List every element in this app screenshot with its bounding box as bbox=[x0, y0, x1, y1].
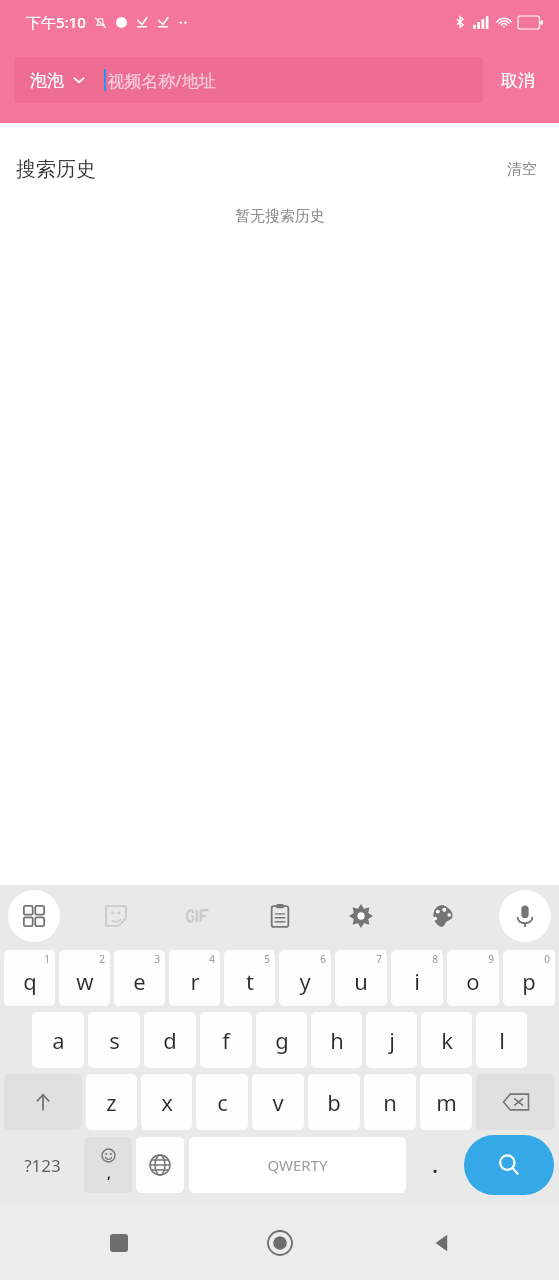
button[interactable]: t bbox=[224, 950, 275, 1006]
button[interactable]: w bbox=[59, 950, 110, 1006]
staticText: n bbox=[383, 1087, 397, 1117]
staticText: 清空 bbox=[507, 160, 537, 179]
button[interactable]: j bbox=[366, 1012, 417, 1068]
staticText: 6 bbox=[320, 952, 326, 966]
button[interactable]: Home bbox=[250, 1213, 310, 1273]
button[interactable]: a bbox=[32, 1012, 84, 1068]
staticText: h bbox=[330, 1025, 344, 1055]
staticText: k bbox=[441, 1025, 453, 1055]
staticText: x bbox=[161, 1087, 173, 1117]
staticText: c bbox=[217, 1087, 228, 1117]
staticText: 4 bbox=[209, 952, 215, 966]
staticText: o bbox=[466, 966, 480, 996]
button[interactable]: h bbox=[311, 1012, 362, 1068]
button[interactable]: 清空 bbox=[501, 154, 543, 185]
staticText: 1 bbox=[44, 952, 50, 966]
button[interactable]: k bbox=[421, 1012, 472, 1068]
staticText: . bbox=[432, 1152, 438, 1179]
staticText: 8 bbox=[432, 952, 438, 966]
staticText: 0 bbox=[544, 952, 550, 966]
button[interactable]: l bbox=[476, 1012, 527, 1068]
button[interactable]: 取消 bbox=[491, 62, 545, 99]
staticText: g bbox=[275, 1025, 289, 1055]
staticText: d bbox=[163, 1025, 177, 1055]
button[interactable]: QWERTY bbox=[189, 1137, 406, 1193]
staticText: QWERTY bbox=[267, 1155, 328, 1175]
button[interactable]: Voice input bbox=[499, 890, 551, 942]
staticText: m bbox=[436, 1087, 457, 1117]
staticText: v bbox=[272, 1087, 284, 1117]
staticText: q bbox=[23, 966, 37, 996]
button[interactable]: d bbox=[144, 1012, 196, 1068]
button[interactable]: Apps bbox=[8, 890, 60, 942]
button[interactable]: f bbox=[200, 1012, 252, 1068]
staticText: 泡泡 bbox=[30, 70, 64, 91]
staticText: l bbox=[499, 1025, 505, 1055]
staticText: 暂无搜索历史 bbox=[235, 207, 325, 226]
button[interactable]: u bbox=[335, 950, 387, 1006]
button[interactable]: Recent apps bbox=[89, 1213, 149, 1273]
button[interactable]: Change language bbox=[136, 1137, 184, 1193]
button[interactable]: g bbox=[256, 1012, 307, 1068]
button[interactable]: Shift bbox=[4, 1074, 82, 1130]
button[interactable]: m bbox=[420, 1074, 472, 1130]
staticText: , bbox=[107, 1163, 111, 1182]
button[interactable]: n bbox=[364, 1074, 416, 1130]
button[interactable]: x bbox=[141, 1074, 192, 1130]
staticText: a bbox=[52, 1025, 65, 1055]
button[interactable]: . bbox=[411, 1137, 459, 1193]
button[interactable]: q bbox=[4, 950, 55, 1006]
button[interactable]: b bbox=[308, 1074, 360, 1130]
staticText: 视频名称/地址 bbox=[107, 69, 216, 92]
staticText: 搜索历史 bbox=[16, 157, 96, 182]
staticText: b bbox=[327, 1087, 341, 1117]
button[interactable]: 泡泡 bbox=[14, 57, 483, 103]
button[interactable]: Back bbox=[411, 1213, 471, 1273]
button[interactable]: Theme bbox=[417, 890, 469, 942]
staticText: z bbox=[106, 1087, 117, 1117]
button[interactable]: Backspace bbox=[476, 1074, 555, 1130]
staticText: 3 bbox=[154, 952, 160, 966]
button[interactable]: ?123 bbox=[5, 1137, 79, 1193]
staticText: 2 bbox=[99, 952, 105, 966]
staticText: s bbox=[109, 1025, 120, 1055]
staticText: 下午5:10 bbox=[26, 12, 86, 32]
staticText: 7 bbox=[376, 952, 382, 966]
staticText: 5 bbox=[264, 952, 270, 966]
staticText: r bbox=[190, 966, 200, 996]
button[interactable]: Search bbox=[464, 1135, 554, 1195]
staticText: i bbox=[414, 966, 420, 996]
button[interactable]: c bbox=[196, 1074, 248, 1130]
staticText: p bbox=[522, 966, 536, 996]
button[interactable]: y bbox=[279, 950, 331, 1006]
staticText: ?123 bbox=[24, 1154, 61, 1177]
button[interactable]: z bbox=[86, 1074, 137, 1130]
button[interactable]: Clipboard bbox=[254, 890, 306, 942]
staticText: t bbox=[246, 966, 254, 996]
button[interactable]: e bbox=[114, 950, 165, 1006]
staticText: e bbox=[133, 966, 146, 996]
button[interactable]: i bbox=[391, 950, 443, 1006]
button[interactable]: Settings bbox=[335, 890, 387, 942]
staticText: 取消 bbox=[501, 70, 535, 91]
staticText: w bbox=[76, 966, 94, 996]
button[interactable]: v bbox=[252, 1074, 304, 1130]
button[interactable]: s bbox=[88, 1012, 140, 1068]
staticText: 9 bbox=[488, 952, 494, 966]
staticText: y bbox=[299, 966, 311, 996]
button[interactable]: o bbox=[447, 950, 499, 1006]
staticText: f bbox=[222, 1025, 230, 1055]
button[interactable]: p bbox=[503, 950, 555, 1006]
button[interactable]: r bbox=[169, 950, 220, 1006]
staticText: u bbox=[354, 966, 368, 996]
button[interactable]: Emoji bbox=[84, 1137, 132, 1193]
staticText: j bbox=[389, 1025, 395, 1055]
button[interactable]: Sticker bbox=[90, 890, 142, 942]
button[interactable]: GIF bbox=[172, 890, 224, 942]
